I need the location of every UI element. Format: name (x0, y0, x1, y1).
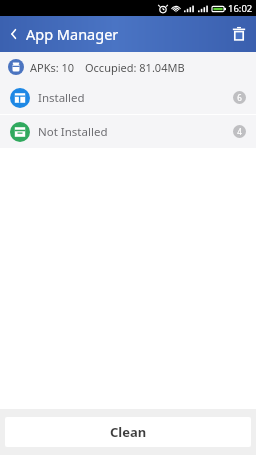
staticText: Clean (110, 423, 147, 441)
button[interactable]: Not Installed (0, 115, 256, 148)
staticText: Installed (38, 90, 85, 106)
button[interactable]: Delete (222, 16, 256, 52)
other: Back (8, 28, 20, 40)
button[interactable]: Clean (5, 417, 251, 447)
staticText: 4 (237, 126, 242, 137)
staticText: Not Installed (38, 124, 108, 140)
staticText: APKs: 10 (30, 60, 75, 75)
button[interactable]: APKs: 10 (0, 52, 256, 81)
button[interactable]: Back (0, 16, 125, 52)
staticText: 6 (237, 92, 242, 103)
button[interactable]: Installed (0, 81, 256, 114)
staticText: Occupied: 81.04MB (85, 60, 185, 75)
staticText: App Manager (26, 24, 119, 44)
staticText: 16:02 (228, 2, 253, 15)
